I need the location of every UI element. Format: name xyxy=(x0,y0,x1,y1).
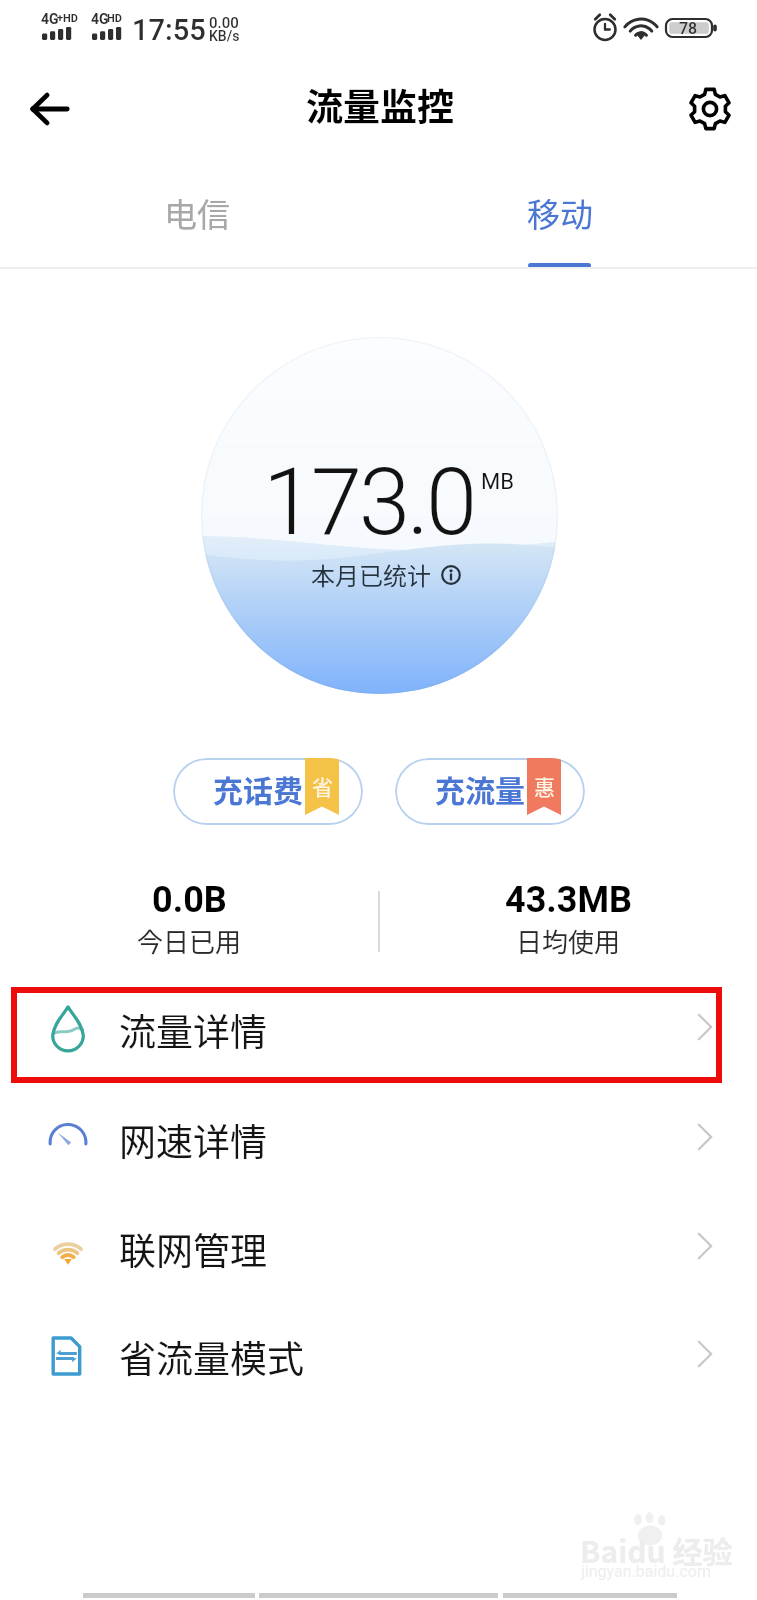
staticText: +HD xyxy=(57,12,78,25)
staticText: 0.00 xyxy=(209,14,239,32)
staticText: 4G xyxy=(41,11,59,27)
staticText: jingyan.baidu.com xyxy=(581,1562,711,1581)
staticText: 日均使用 xyxy=(516,922,621,960)
button[interactable]: 电信 xyxy=(8,160,386,266)
button[interactable]: 联网管理 xyxy=(0,1206,757,1302)
staticText: 联网管理 xyxy=(119,1222,267,1276)
staticText: 今日已用 xyxy=(137,922,242,960)
staticText: KB/s xyxy=(209,28,240,44)
staticText: 惠 xyxy=(534,771,555,801)
staticText: 17:55 xyxy=(132,13,206,47)
staticText: 173.0 xyxy=(263,449,475,557)
button[interactable]: 充流量 xyxy=(395,758,585,825)
staticText: 充话费 xyxy=(213,767,303,810)
staticText: 移动 xyxy=(527,189,593,237)
button[interactable]: 充话费 xyxy=(173,758,363,825)
button[interactable]: 流量详情 xyxy=(0,987,757,1083)
staticText: 本月已统计 xyxy=(311,557,431,592)
staticText: 0.0B xyxy=(152,879,227,921)
staticText: 省流量模式 xyxy=(119,1330,304,1384)
staticText: 网速详情 xyxy=(119,1113,267,1167)
staticText: 43.3MB xyxy=(505,879,632,921)
staticText: 流量详情 xyxy=(119,1003,267,1057)
button[interactable]: 网速详情 xyxy=(0,1097,757,1193)
other: Info xyxy=(441,565,461,585)
staticText: 电信 xyxy=(164,189,230,237)
staticText: HD xyxy=(107,12,122,25)
button[interactable]: Back xyxy=(18,77,82,141)
staticText: Baidu 经验 xyxy=(580,1528,733,1571)
button[interactable]: 移动 xyxy=(370,160,749,266)
staticText: 4G xyxy=(91,11,109,27)
staticText: 充流量 xyxy=(435,767,525,810)
button[interactable]: 省流量模式 xyxy=(0,1314,757,1410)
staticText: MB xyxy=(481,469,514,495)
staticText: 省 xyxy=(312,771,333,801)
button[interactable]: Settings xyxy=(678,77,742,141)
staticText: 流量监控 xyxy=(306,78,454,132)
staticText: 78 xyxy=(679,19,698,38)
button[interactable]: 本月已统计 xyxy=(311,557,461,592)
